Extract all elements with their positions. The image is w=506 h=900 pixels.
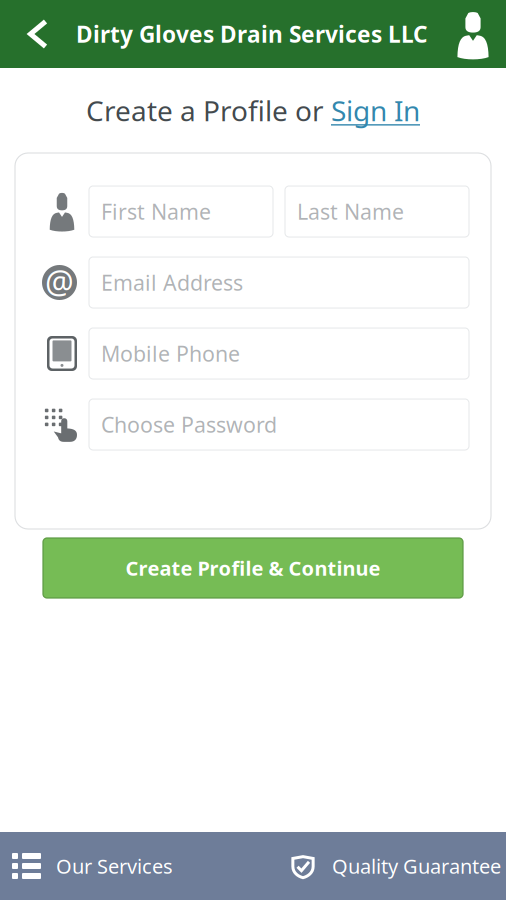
staticText: First Name [101,197,211,226]
button[interactable]: Email Address [89,257,469,308]
staticText: Our Services [56,853,173,879]
staticText: Email Address [101,268,243,297]
staticText: Create Profile & Continue [125,555,380,581]
staticText: Dirty Gloves Drain Services LLC [76,19,428,49]
button[interactable]: Our Services [0,832,230,900]
button[interactable]: Account [444,0,506,68]
button[interactable]: Create Profile & Continue [43,538,463,598]
button[interactable]: Quality Guarantee [230,832,506,900]
button[interactable]: Sign In [331,92,420,129]
staticText: Create a Profile or [86,92,331,129]
staticText: Choose Password [101,410,277,439]
button[interactable]: Back [0,0,60,68]
button[interactable]: First Name [89,186,273,237]
button[interactable]: Last Name [285,186,469,237]
staticText: Last Name [297,197,404,226]
staticText: Sign In [331,92,420,129]
staticText: @ [45,261,74,303]
staticText: Mobile Phone [101,339,240,368]
staticText: Quality Guarantee [332,853,501,879]
button[interactable]: Choose Password [89,399,469,450]
button[interactable]: Mobile Phone [89,328,469,379]
